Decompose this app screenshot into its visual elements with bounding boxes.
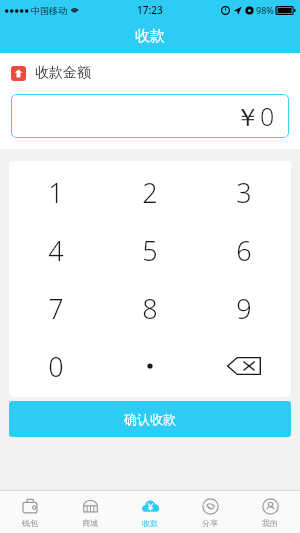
button[interactable]: 9 (197, 279, 291, 337)
staticText: 0 (48, 348, 64, 385)
button[interactable]: 收款 (120, 491, 180, 533)
button[interactable]: 钱包 (0, 491, 60, 533)
button[interactable]: 商城 (60, 491, 120, 533)
staticText: 17:23 (137, 3, 163, 17)
button[interactable]: 1 (9, 163, 103, 221)
button[interactable] (103, 337, 197, 395)
staticText: 收款 (135, 27, 165, 46)
staticText: 收款 (142, 518, 158, 528)
button[interactable]: 2 (103, 163, 197, 221)
staticText: 商城 (82, 518, 98, 528)
button[interactable]: 5 (103, 221, 197, 279)
staticText: 9 (236, 290, 252, 327)
staticText: 2 (142, 174, 158, 211)
staticText: 分享 (202, 518, 218, 528)
button[interactable]: 4 (9, 221, 103, 279)
staticText: 中国移动 (31, 5, 67, 16)
staticText: 钱包 (22, 518, 38, 528)
staticText: 7 (48, 290, 64, 327)
staticText: 98% (256, 4, 274, 16)
button[interactable]: 分享 (180, 491, 240, 533)
staticText: 8 (142, 290, 158, 327)
staticText: 6 (236, 232, 252, 269)
staticText: 我的 (262, 518, 278, 528)
button[interactable]: 确认收款 (9, 401, 291, 437)
button[interactable]: 8 (103, 279, 197, 337)
staticText: 5 (142, 232, 158, 269)
staticText: 确认收款 (124, 411, 176, 427)
button[interactable]: 6 (197, 221, 291, 279)
staticText: ￥0 (235, 99, 275, 133)
staticText: 收款金额 (35, 64, 91, 82)
button[interactable]: ￥0 (11, 94, 289, 138)
staticText: 1 (48, 174, 64, 211)
button[interactable]: 0 (9, 337, 103, 395)
button[interactable]: 3 (197, 163, 291, 221)
button[interactable]: 7 (9, 279, 103, 337)
button[interactable]: Delete (197, 337, 291, 395)
staticText: 4 (48, 232, 64, 269)
button[interactable]: 我的 (240, 491, 300, 533)
staticText: 3 (236, 174, 252, 211)
